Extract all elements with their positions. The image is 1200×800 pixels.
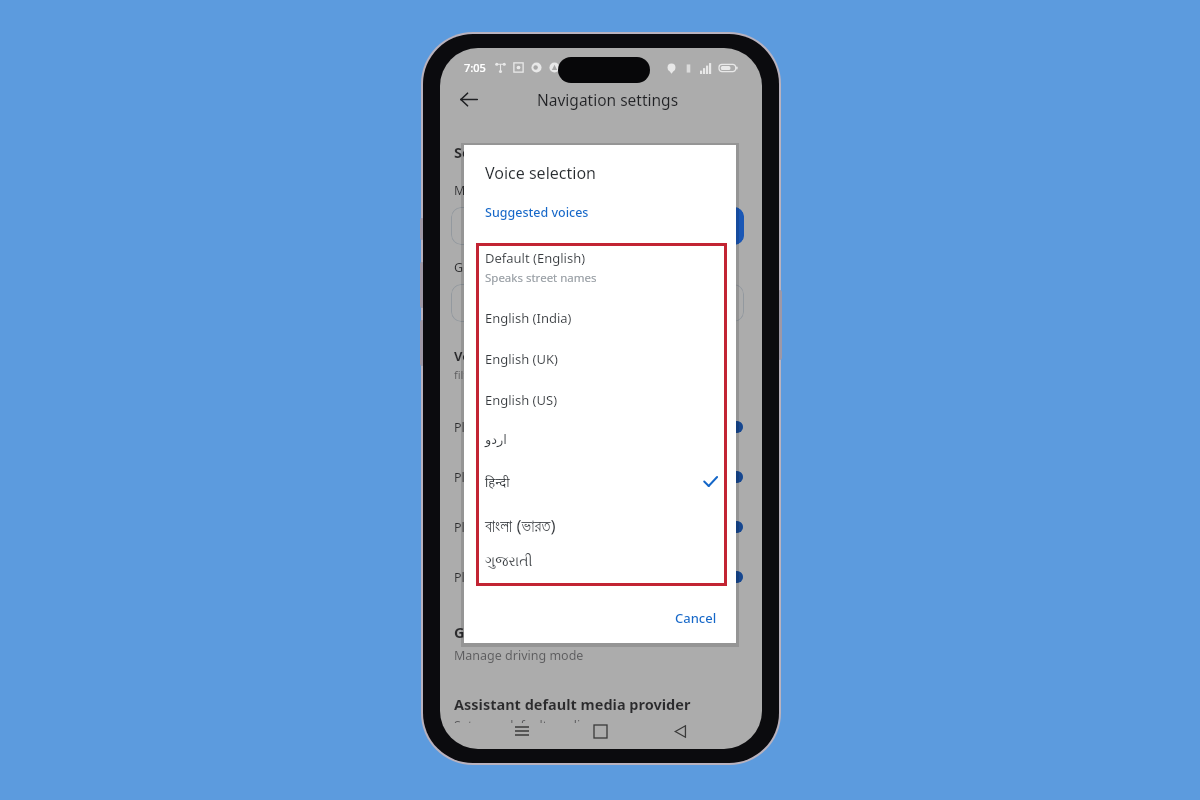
button[interactable]: Play speed-limit alerts [440,552,762,602]
button[interactable]: हिन्दी [464,473,736,514]
button[interactable]: Back [448,85,488,114]
button[interactable]: Back [662,713,698,749]
button[interactable] [451,284,548,322]
button[interactable]: Cancel [667,603,725,633]
button[interactable]: English (US) [464,391,736,432]
button[interactable] [548,207,646,245]
staticText: Voice [454,347,489,365]
staticText: Play traffic alert sounds [454,519,592,536]
staticText: اردو [485,432,507,447]
button[interactable]: Play voice over Bluetooth [440,402,762,452]
button[interactable]: বাংলা (ভারত) [464,514,736,555]
button[interactable]: Home [582,713,618,749]
staticText: English (India) [485,309,572,327]
staticText: Voice selection [485,162,596,184]
staticText: Sound and voice [454,142,572,162]
button[interactable] [646,284,744,322]
button[interactable]: English (UK) [464,350,736,391]
staticText: Assistant default media provider [454,694,691,714]
button[interactable]: English (India) [464,309,736,350]
staticText: English (UK) [485,350,558,368]
staticText: ગુજરાતી [485,555,533,569]
staticText: English (US) [485,391,558,409]
button[interactable] [646,207,744,245]
staticText: Play voice over Bluetooth [454,419,602,436]
staticText: Navigation settings [537,89,679,110]
button[interactable]: اردو [464,432,736,473]
staticText: Play speed-limit alerts [454,569,583,586]
button[interactable]: Default (English) [464,249,736,309]
staticText: 7:05 [464,60,486,75]
staticText: বাংলা (ভারত) [485,514,556,537]
button[interactable]: Recents [504,713,540,749]
staticText: Mute [454,182,485,199]
button[interactable]: ગુજરાતી [464,555,736,596]
staticText: Suggested voices [485,204,589,221]
button[interactable]: Play voice during calls [440,452,762,502]
button[interactable] [451,207,548,245]
staticText: Google Assistant settings [454,622,638,642]
staticText: filter [454,367,479,382]
staticText: Play voice during calls [454,469,583,486]
button[interactable] [548,284,646,322]
staticText: Default (English) [485,249,586,267]
staticText: Set your default media app [454,717,613,723]
staticText: Speaks street names [485,270,597,286]
button[interactable]: Play traffic alert sounds [440,502,762,552]
staticText: Guidance volume [454,259,557,276]
staticText: Cancel [675,609,717,627]
staticText: Manage driving mode [454,647,584,664]
staticText: हिन्दी [485,473,510,491]
